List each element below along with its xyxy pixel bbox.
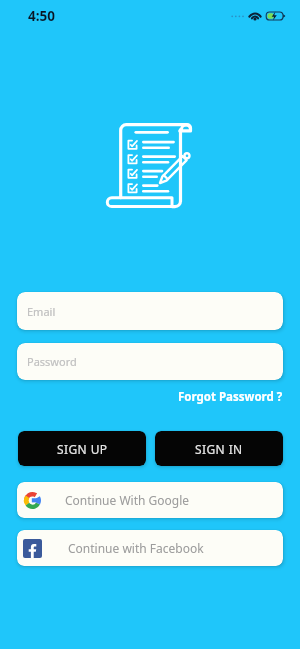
staticText: SIGN UP <box>57 441 108 457</box>
button[interactable]: Forgot Password ? <box>168 384 300 410</box>
staticText: Email <box>27 304 56 319</box>
button[interactable]: Continue With Google <box>17 482 283 518</box>
staticText: SIGN IN <box>195 441 243 457</box>
staticText: Continue with Facebook <box>68 540 204 556</box>
staticText: Forgot Password ? <box>178 389 283 405</box>
button[interactable]: SIGN UP <box>18 431 146 466</box>
button[interactable]: Email <box>17 292 283 330</box>
button[interactable]: Password <box>17 343 283 380</box>
staticText: 4:50 <box>28 7 55 25</box>
button[interactable]: SIGN IN <box>155 431 283 466</box>
staticText: Continue With Google <box>65 492 190 508</box>
staticText: Password <box>27 354 77 369</box>
button[interactable]: Continue with Facebook <box>17 530 283 566</box>
